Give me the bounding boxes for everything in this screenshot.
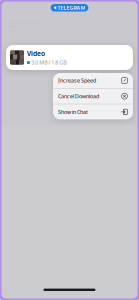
staticText: Video bbox=[27, 49, 45, 58]
button[interactable]: Cancel Download bbox=[53, 89, 133, 104]
button[interactable]: Increase Speed bbox=[53, 73, 133, 88]
staticText: TELEGRAM bbox=[57, 4, 85, 11]
staticText: 3.0 MB / 1.8 GB bbox=[31, 59, 66, 66]
staticText: Cancel Download bbox=[58, 93, 99, 100]
button[interactable]: Video bbox=[6, 45, 133, 70]
button[interactable]: Back to Telegram bbox=[51, 4, 88, 11]
button[interactable]: Show in Chat bbox=[53, 104, 133, 119]
staticText: Show in Chat bbox=[58, 108, 88, 115]
staticText: Increase Speed bbox=[58, 77, 96, 84]
